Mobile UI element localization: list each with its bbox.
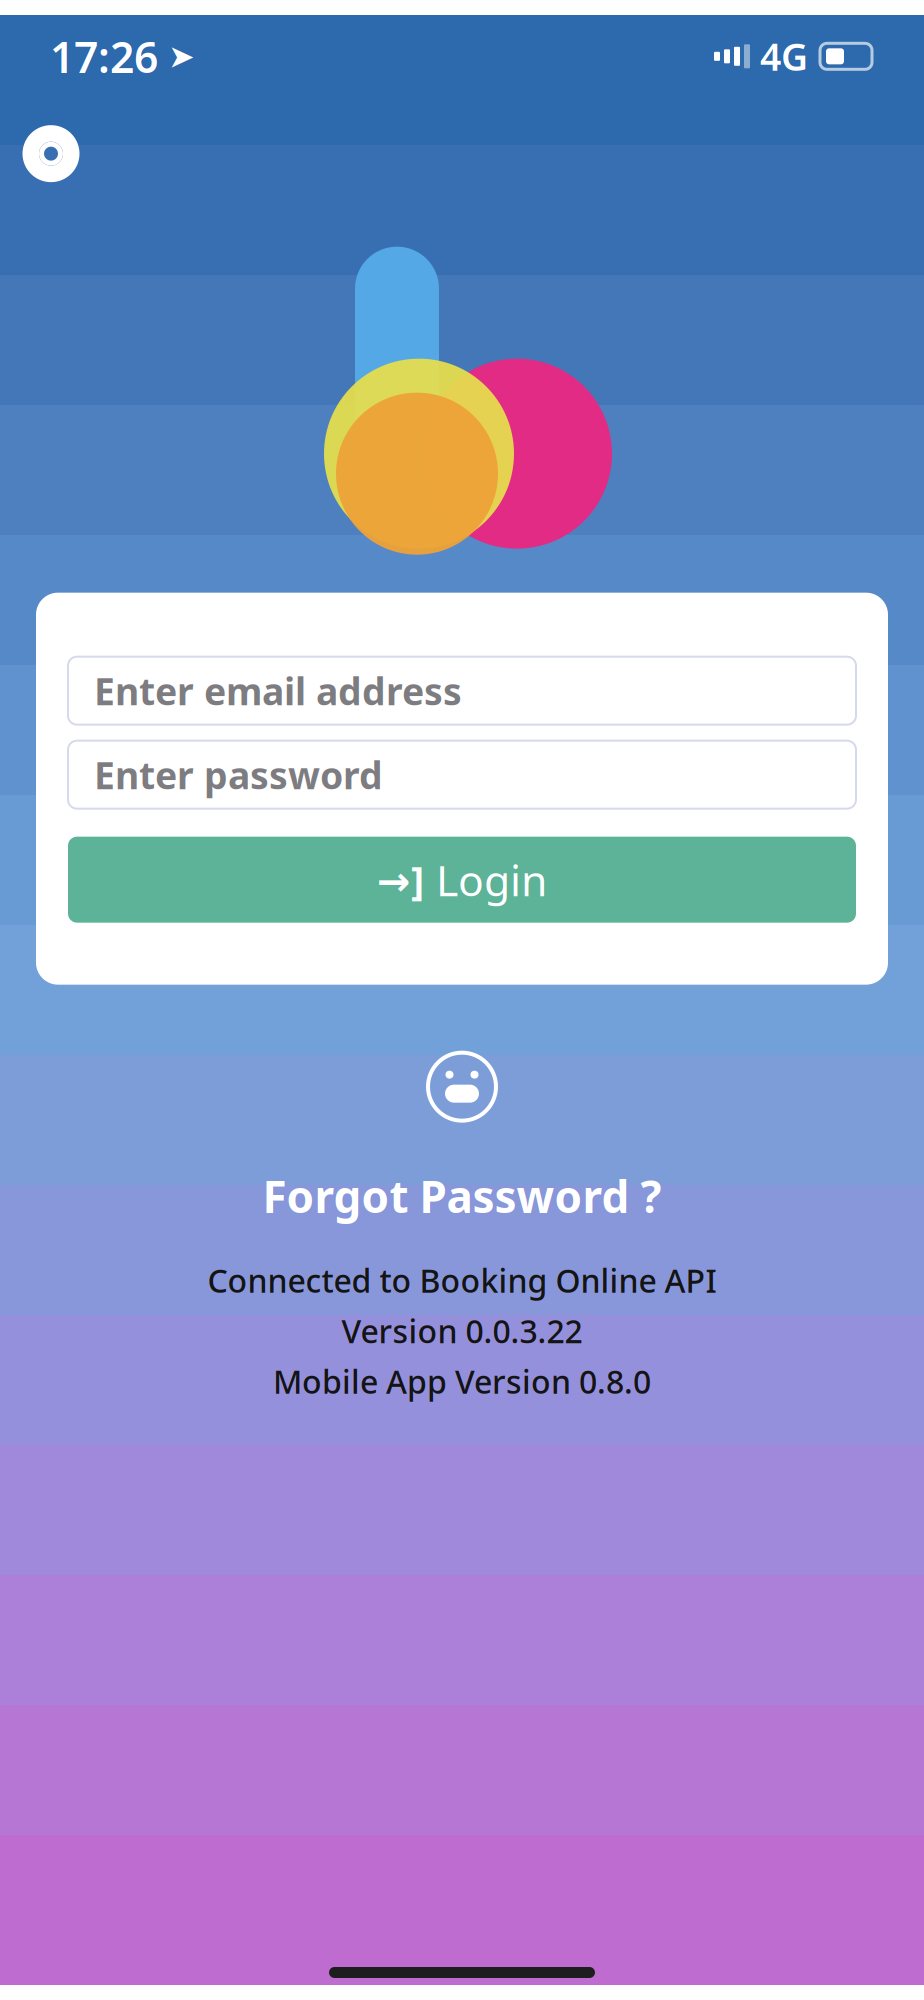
- staticText: Connected to Booking Online API: [207, 1259, 716, 1302]
- button[interactable]: →]: [68, 837, 856, 923]
- staticText: 4G: [760, 31, 808, 81]
- staticText: 17:26: [50, 28, 158, 85]
- staticText: →]: [377, 853, 424, 906]
- staticText: Login: [436, 851, 547, 908]
- staticText: Mobile App Version 0.8.0: [273, 1360, 651, 1403]
- staticText: Version 0.0.3.22: [341, 1310, 582, 1352]
- staticText: Enter email address: [94, 666, 462, 715]
- button[interactable]: Settings: [0, 115, 102, 193]
- button[interactable]: Forgot Password ?: [222, 1043, 701, 1231]
- staticText: Forgot Password ?: [262, 1167, 661, 1225]
- staticText: Enter password: [94, 750, 383, 799]
- button[interactable]: Enter email address: [68, 657, 856, 725]
- button[interactable]: Enter password: [68, 741, 856, 809]
- staticText: ➤: [168, 38, 195, 74]
